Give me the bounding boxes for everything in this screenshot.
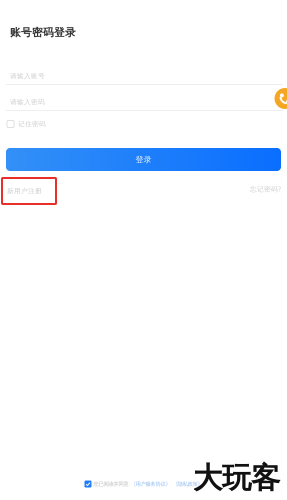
- button[interactable]: 登录: [6, 148, 281, 171]
- button[interactable]: 在线客服: [274, 88, 287, 109]
- staticText: 记住密码: [18, 120, 46, 128]
- button[interactable]: 请输入账号: [6, 68, 283, 85]
- button[interactable]: 新用户注册: [2, 178, 56, 204]
- button[interactable]: 请输入密码: [6, 94, 283, 111]
- button[interactable]: 忘记密码?: [238, 182, 281, 196]
- staticText: 请输入账号: [10, 72, 45, 80]
- staticText: 《隐私政策》: [172, 481, 202, 487]
- staticText: 《用户服务协议》: [130, 481, 170, 487]
- staticText: 您已阅读并同意: [93, 481, 128, 487]
- staticText: 账号密码登录: [10, 26, 76, 39]
- staticText: 登录: [135, 155, 151, 164]
- button[interactable]: 您已阅读并同意: [0, 478, 287, 490]
- staticText: 请输入密码: [10, 98, 45, 106]
- staticText: 新用户注册: [7, 187, 42, 195]
- staticText: 大玩客: [193, 460, 280, 496]
- staticText: 忘记密码?: [250, 185, 281, 193]
- button[interactable]: 记住密码: [7, 118, 50, 130]
